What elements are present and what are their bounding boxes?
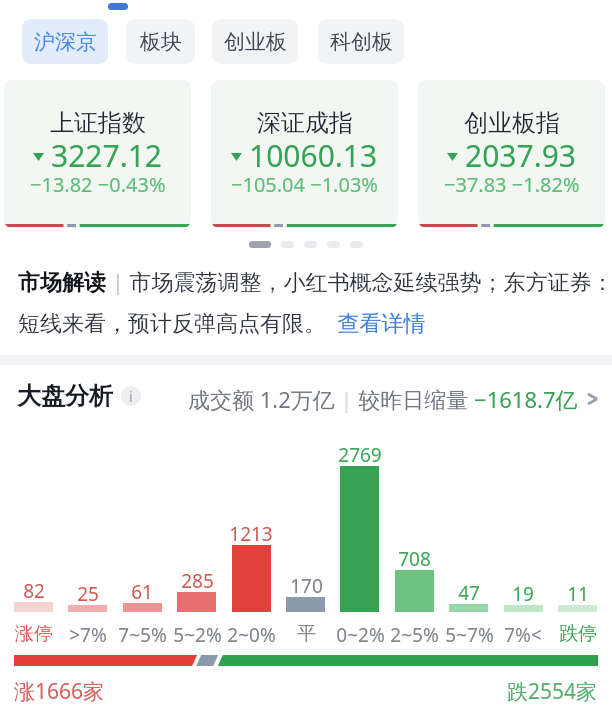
button[interactable]: 成交额 1.2万亿 | 较昨日缩量 −1618.7亿 [0,384,598,414]
staticText: 170 [290,573,323,593]
staticText: 7%< [504,622,542,642]
button[interactable]: 创业板 [212,19,298,64]
staticText: 7~5% [118,622,167,642]
button[interactable]: 市场解读 | 市场震荡调整，小红书概念延续强势；东方证券： [0,266,612,337]
staticText: 10060.13 [249,135,378,176]
staticText: 2769 [338,442,382,462]
staticText: 47 [458,580,480,600]
staticText: 科创板 [330,29,393,55]
staticText: 市场解读 | 市场震荡调整，小红书概念延续强势；东方证券： [18,266,612,296]
staticText: 2037.93 [465,135,576,176]
button[interactable]: 创业板指 [418,80,605,228]
staticText: 上证指数 [50,108,146,138]
staticText: 285 [181,568,214,588]
staticText: 短线来看，预计反弹高点有限。 查看详情 [18,307,426,337]
staticText: 82 [23,578,45,598]
staticText: 25 [77,581,99,601]
staticText: 跌停 [559,622,597,642]
button[interactable]: 上证指数 [4,80,191,228]
staticText: 0~2% [336,622,385,642]
staticText: 创业板指 [464,108,560,138]
staticText: 沪深京 [34,29,97,55]
staticText: 大盘分析 [17,381,113,411]
staticText: >7% [69,622,107,642]
button[interactable]: 科创板 [318,19,404,64]
staticText: −13.82 −0.43% [30,171,166,198]
staticText: 成交额 1.2万亿 | 较昨日缩量 −1618.7亿 [188,384,578,414]
button[interactable]: 指标说明 [121,386,141,406]
button[interactable]: 沪深京 [22,19,108,64]
staticText: 平 [297,622,316,642]
staticText: 708 [398,546,431,566]
staticText: 涨停 [15,622,53,642]
staticText: i [129,387,133,406]
staticText: 3227.12 [51,135,162,176]
staticText: 5~7% [445,622,494,642]
staticText: 2~0% [227,622,276,642]
staticText: −105.04 −1.03% [231,171,378,198]
staticText: 2~5% [390,622,439,642]
button[interactable]: 深证成指 [211,80,398,228]
button[interactable]: 板块 [126,19,195,64]
staticText: 11 [567,581,589,601]
staticText: 跌2554家 [507,677,598,706]
staticText: 创业板 [224,29,287,55]
staticText: 19 [512,581,534,601]
staticText: 深证成指 [257,108,353,138]
staticText: 1213 [229,521,273,541]
staticText: 5~2% [173,622,222,642]
staticText: 61 [131,579,153,599]
staticText: 板块 [140,29,182,55]
staticText: 涨1666家 [14,677,105,706]
staticText: −37.83 −1.82% [444,171,580,198]
